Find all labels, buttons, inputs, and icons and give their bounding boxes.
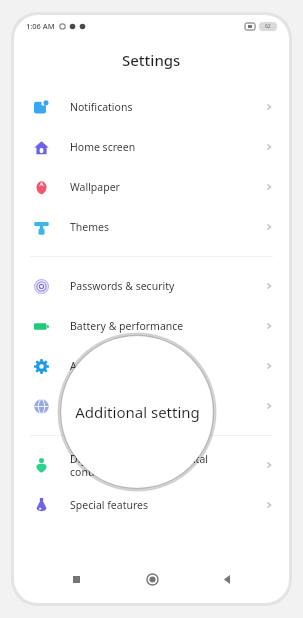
button[interactable]: Wallpaper (14, 167, 289, 207)
button[interactable]: Back (214, 566, 240, 592)
staticText: Home screen (70, 140, 264, 154)
button[interactable]: Battery & performance (14, 306, 289, 346)
staticText: Additional setting (75, 402, 200, 422)
staticText: Themes (70, 220, 264, 234)
button[interactable]: Digital Wellbeing & parental controls (14, 445, 289, 485)
staticText: Settings (122, 50, 181, 70)
button[interactable]: Additional settings (14, 346, 289, 386)
staticText: Notifications (70, 100, 264, 114)
staticText: Passwords & security (70, 279, 264, 293)
staticText: 1:06 AM (26, 21, 55, 31)
staticText: Additional settings (70, 359, 264, 373)
button[interactable]: Notifications (14, 87, 289, 127)
staticText: Special features (70, 498, 264, 512)
button[interactable]: Home (139, 566, 165, 592)
staticText: 62 (265, 23, 271, 30)
button[interactable]: Special features (14, 485, 289, 525)
button[interactable]: Language & region (14, 386, 289, 426)
button[interactable]: Passwords & security (14, 266, 289, 306)
staticText: Battery & performance (70, 319, 264, 333)
staticText: Wallpaper (70, 180, 264, 194)
button[interactable]: Home screen (14, 127, 289, 167)
staticText: Language & region (70, 399, 264, 413)
staticText: Digital Wellbeing & parental controls (70, 452, 264, 479)
button[interactable]: Recents (63, 566, 89, 592)
button[interactable]: Themes (14, 207, 289, 247)
